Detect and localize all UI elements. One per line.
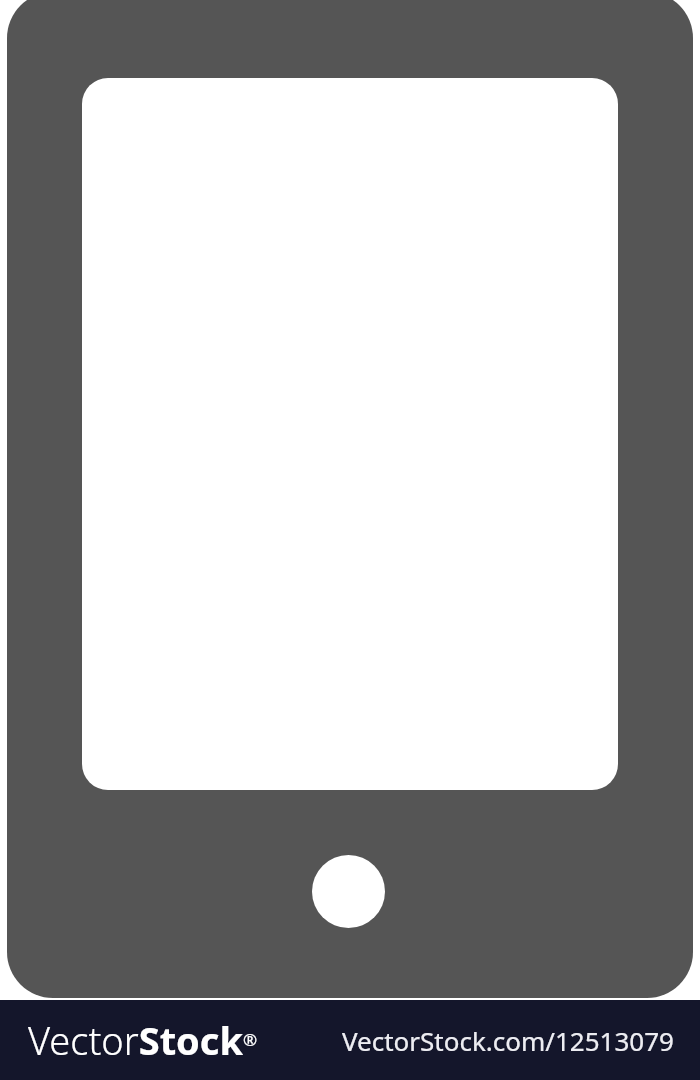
- staticText: VectorStock.com/12513079: [342, 1023, 674, 1058]
- button[interactable]: Tablet screen: [82, 78, 618, 790]
- button[interactable]: VectorStock®: [28, 1014, 258, 1066]
- button[interactable]: Tablet device: [7, 0, 693, 998]
- button[interactable]: Home button: [312, 855, 385, 928]
- button[interactable]: VectorStock.com/12513079: [342, 1023, 674, 1058]
- staticText: VectorStock®: [28, 1014, 258, 1066]
